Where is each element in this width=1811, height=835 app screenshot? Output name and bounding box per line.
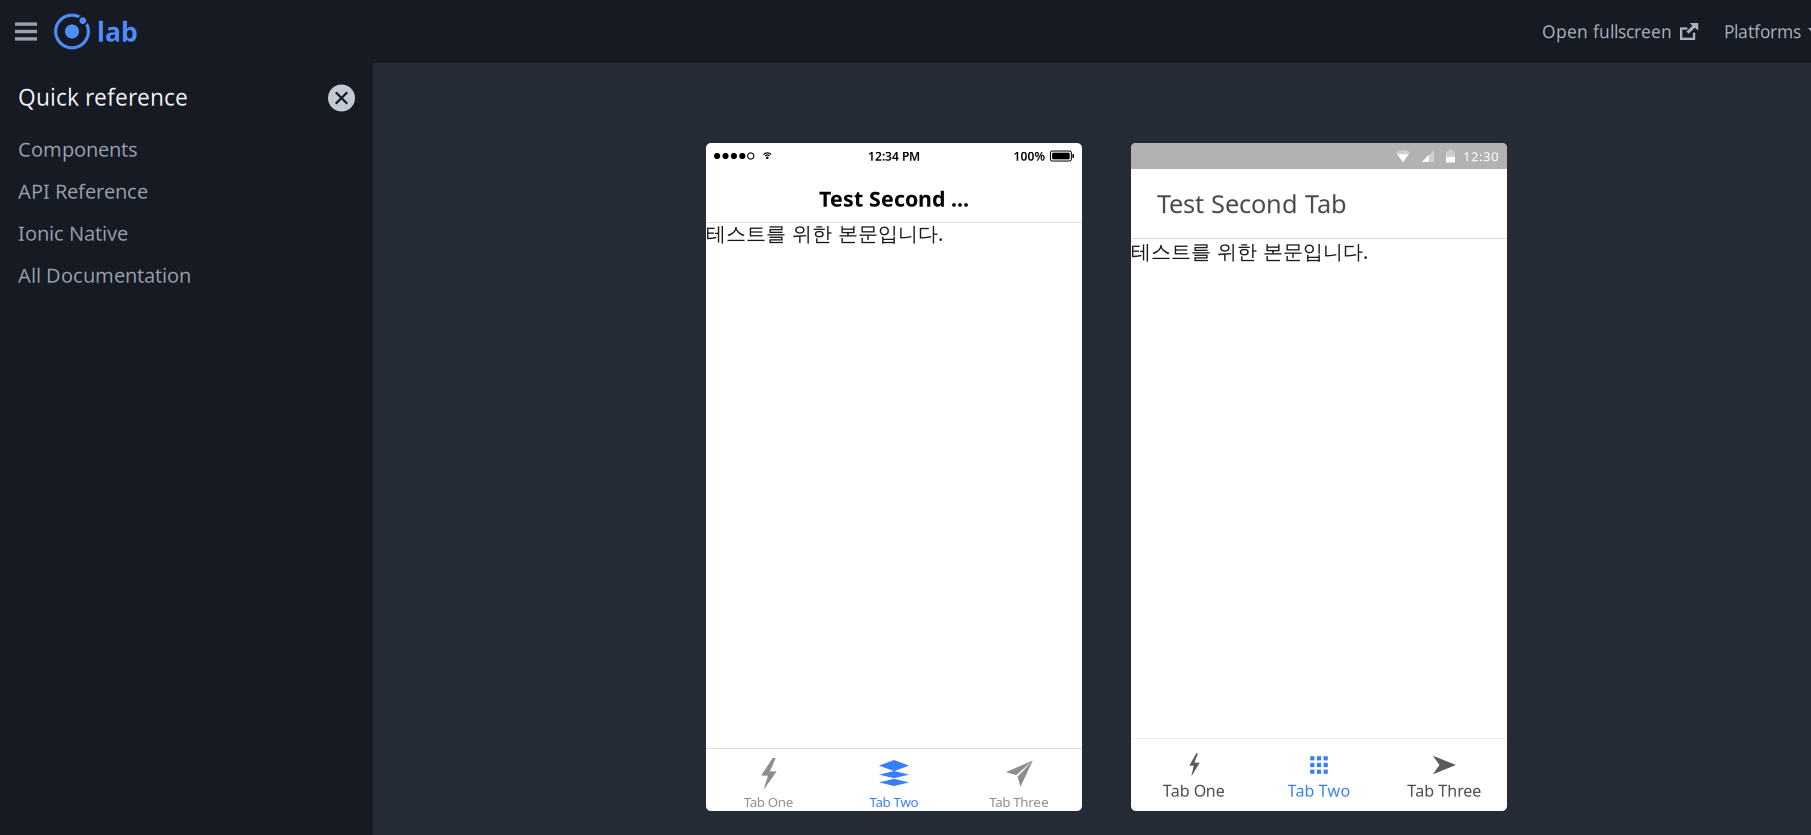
staticText: API Reference: [18, 178, 148, 204]
button[interactable]: Tab Two: [1256, 739, 1382, 811]
staticText: Tab Three: [1407, 780, 1481, 801]
staticText: All Documentation: [18, 262, 191, 288]
staticText: 테스트를 위한 본문입니다.: [706, 220, 943, 247]
staticText: 테스트를 위한 본문입니다.: [1131, 238, 1368, 265]
staticText: Ionic Native: [18, 220, 128, 246]
button[interactable]: Open fullscreen: [1542, 10, 1699, 53]
staticText: Platforms: [1724, 20, 1801, 43]
staticText: Tab Three: [989, 793, 1049, 811]
button[interactable]: Components: [0, 128, 373, 170]
staticText: 100%: [1013, 148, 1045, 164]
button[interactable]: Tab Three: [1382, 739, 1507, 811]
button[interactable]: Ionic Native: [0, 212, 373, 254]
staticText: 12:30: [1463, 147, 1499, 165]
staticText: Open fullscreen: [1542, 20, 1672, 43]
button[interactable]: Menu: [6, 0, 46, 63]
button[interactable]: Tab One: [706, 749, 831, 811]
staticText: Tab Two: [1287, 780, 1350, 801]
staticText: 12:34 PM: [868, 148, 920, 164]
button[interactable]: Close quick reference: [328, 84, 355, 111]
staticText: Components: [18, 136, 138, 162]
staticText: lab: [97, 14, 138, 49]
button[interactable]: All Documentation: [0, 254, 373, 296]
button[interactable]: Tab Three: [957, 749, 1082, 811]
button[interactable]: Tab Two: [831, 749, 957, 811]
staticText: Tab One: [1163, 780, 1225, 801]
button[interactable]: API Reference: [0, 170, 373, 212]
button[interactable]: Tab One: [1131, 739, 1256, 811]
staticText: Test Second Tab: [1157, 187, 1347, 220]
staticText: Quick reference: [18, 82, 188, 112]
button[interactable]: Platforms: [1724, 10, 1811, 53]
staticText: Test Second ...: [819, 184, 969, 213]
staticText: Tab Two: [869, 793, 918, 811]
staticText: Tab One: [744, 793, 794, 811]
